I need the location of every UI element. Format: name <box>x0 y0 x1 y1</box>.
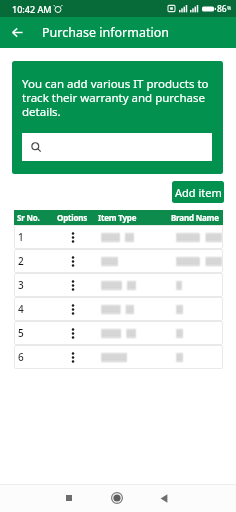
button[interactable]: 3 <box>14 273 223 297</box>
button[interactable] <box>22 133 212 161</box>
staticText: % <box>227 5 232 12</box>
button[interactable]: Home <box>103 484 131 512</box>
button[interactable]: Recents <box>55 484 83 512</box>
other: More options <box>71 232 75 243</box>
button[interactable]: 4 <box>14 297 223 321</box>
staticText: Sr No. <box>17 212 40 223</box>
button[interactable]: 5 <box>14 321 223 345</box>
button[interactable]: Back <box>0 17 34 48</box>
other: More options <box>71 352 75 363</box>
staticText: 4 <box>18 302 24 316</box>
button[interactable]: 1 <box>14 225 223 249</box>
other: More options <box>71 280 75 291</box>
staticText: 6 <box>18 350 24 364</box>
staticText: 3 <box>18 278 24 292</box>
staticText: Brand Name <box>171 212 219 223</box>
other: More options <box>71 304 75 315</box>
staticText: 1 <box>18 230 24 244</box>
staticText: 5 <box>18 326 24 340</box>
staticText: You can add various IT products to track… <box>22 76 212 119</box>
staticText: Add item <box>175 185 222 200</box>
other: More options <box>71 328 75 339</box>
button[interactable]: 2 <box>14 249 223 273</box>
staticText: 2 <box>18 254 24 268</box>
staticText: 86 <box>217 3 227 15</box>
staticText: Options <box>57 212 88 223</box>
button[interactable]: 6 <box>14 345 223 369</box>
staticText: 10:42 AM <box>12 3 52 15</box>
staticText: Item Type <box>98 212 137 223</box>
button[interactable]: Back <box>150 484 178 512</box>
button[interactable]: Add item <box>172 181 224 203</box>
other: More options <box>71 256 75 267</box>
staticText: Purchase information <box>42 24 169 41</box>
